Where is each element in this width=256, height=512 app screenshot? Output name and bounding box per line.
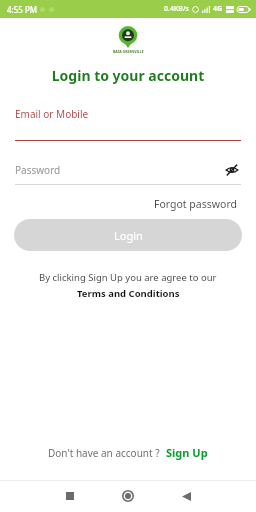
staticText: Login to your account <box>0 66 256 85</box>
staticText: BATA GREENVILLE <box>113 49 144 54</box>
button[interactable]: Show password <box>223 161 241 179</box>
staticText: By clicking Sign Up you are agree to our <box>39 271 217 284</box>
staticText: Email or Mobile <box>15 107 89 121</box>
staticText: Login <box>114 228 143 243</box>
button[interactable]: Home <box>114 482 142 510</box>
button[interactable]: Sign Up <box>166 445 208 460</box>
staticText: 4:55 PM <box>7 4 38 15</box>
button[interactable]: Forgot password <box>150 193 241 215</box>
button[interactable]: Password <box>15 161 241 185</box>
button[interactable]: Recent apps <box>56 482 84 510</box>
button[interactable]: Login <box>14 219 242 251</box>
button[interactable]: Email or Mobile <box>15 107 241 141</box>
button[interactable]: Back <box>172 482 200 510</box>
staticText: 0.4KB/s <box>164 4 190 14</box>
staticText: Password <box>15 163 223 177</box>
staticText: Sign Up <box>166 445 208 460</box>
staticText: 4G <box>213 4 223 14</box>
staticText: Terms and Conditions <box>77 287 180 300</box>
staticText: Forgot password <box>154 197 237 211</box>
staticText: Don't have an account ? <box>48 446 160 460</box>
button[interactable]: Terms and Conditions <box>77 287 180 300</box>
